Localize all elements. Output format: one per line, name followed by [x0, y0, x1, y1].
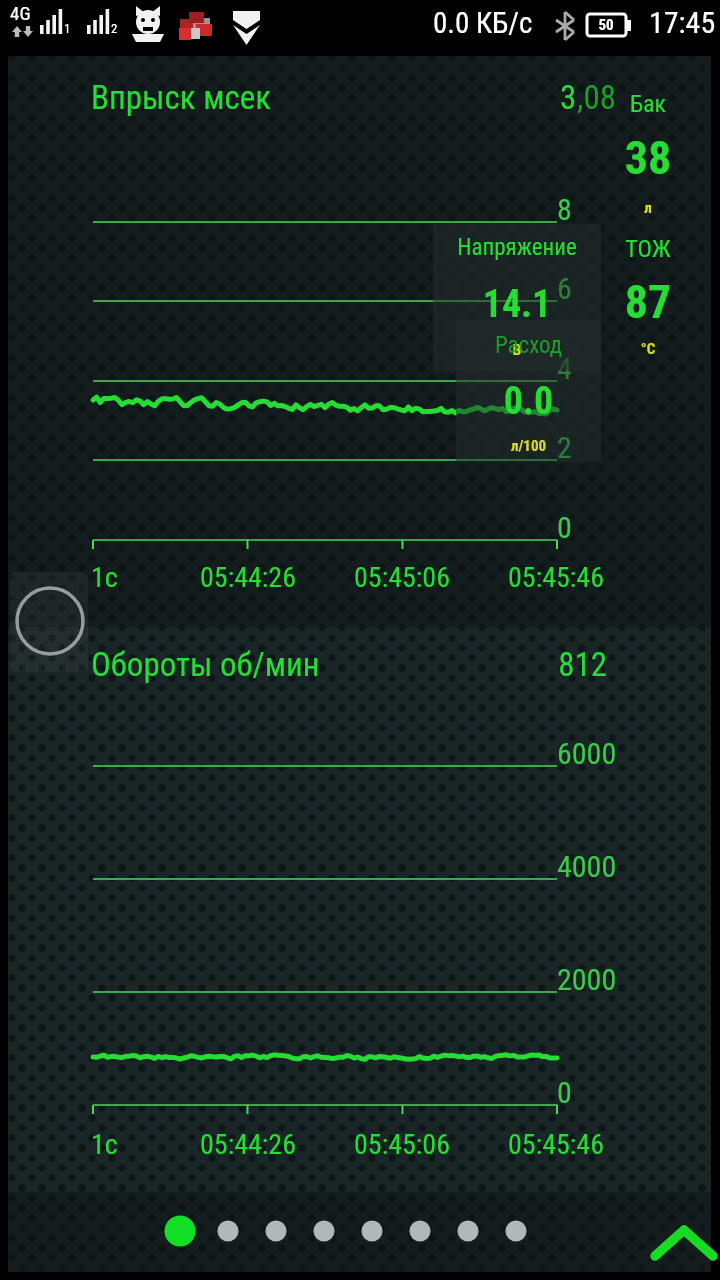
staticText: Бак [518, 90, 720, 118]
staticText: л/100 [456, 437, 601, 455]
staticText: В [433, 341, 601, 359]
staticText: °C [518, 340, 720, 358]
staticText: 4G [10, 2, 31, 24]
staticText: 38 [518, 131, 720, 185]
staticText: 6 [557, 271, 572, 306]
staticText: 17:45 [649, 5, 716, 40]
staticText: 2 [111, 21, 118, 36]
button[interactable]: Expand panel [645, 1218, 720, 1262]
button[interactable]: Page 2 [206, 1209, 250, 1253]
staticText: 2 [557, 430, 572, 465]
staticText: 812 [407, 645, 607, 684]
button[interactable]: Coolant temperature gauge [601, 217, 711, 362]
staticText: 0 [557, 1075, 572, 1110]
staticText: ТОЖ [518, 235, 720, 263]
staticText: 0 [557, 510, 572, 545]
staticText: 4000 [557, 849, 617, 884]
staticText: л [518, 199, 720, 217]
staticText: 05:44:26 [200, 1128, 297, 1161]
staticText: 05:45:06 [354, 561, 451, 594]
staticText: 6000 [557, 736, 617, 771]
button[interactable]: Voltage card [433, 224, 601, 371]
button[interactable]: RPM chart [8, 627, 600, 1192]
staticText: 05:45:06 [354, 1128, 451, 1161]
button[interactable]: Fuel consumption card [456, 320, 601, 462]
staticText: 14.1 [433, 282, 601, 327]
staticText: ,08 [577, 78, 617, 117]
staticText: 3 [560, 78, 577, 117]
button[interactable]: Page 3 [254, 1209, 298, 1253]
staticText: 1с [91, 561, 118, 594]
staticText: 05:45:46 [508, 1128, 605, 1161]
button[interactable]: Page 4 [302, 1209, 346, 1253]
button[interactable]: Page 1 [158, 1209, 202, 1253]
button[interactable]: Chart options [10, 572, 88, 672]
staticText: 05:44:26 [200, 561, 297, 594]
staticText: 8 [557, 192, 572, 227]
staticText: Расход [456, 332, 601, 359]
staticText: Напряжение [433, 234, 601, 261]
staticText: 0.0 [456, 379, 601, 424]
staticText: 2000 [557, 962, 617, 997]
button[interactable]: Page 6 [398, 1209, 442, 1253]
staticText: 0.0 КБ/с [433, 6, 533, 40]
button[interactable]: Injection chart [8, 56, 600, 627]
staticText: 1 [64, 21, 71, 36]
staticText: 05:45:46 [508, 561, 605, 594]
staticText: 87 [518, 275, 720, 329]
button[interactable]: Page 7 [446, 1209, 490, 1253]
staticText: Впрыск мсек [91, 78, 272, 117]
staticText: 50 [576, 16, 636, 34]
staticText: Обороты об/мин [91, 645, 320, 684]
button[interactable]: Page 5 [350, 1209, 394, 1253]
button[interactable]: Page 8 [494, 1209, 538, 1253]
staticText: 1с [91, 1128, 118, 1161]
button[interactable]: Fuel tank gauge [601, 72, 711, 217]
staticText: 4 [557, 351, 572, 386]
